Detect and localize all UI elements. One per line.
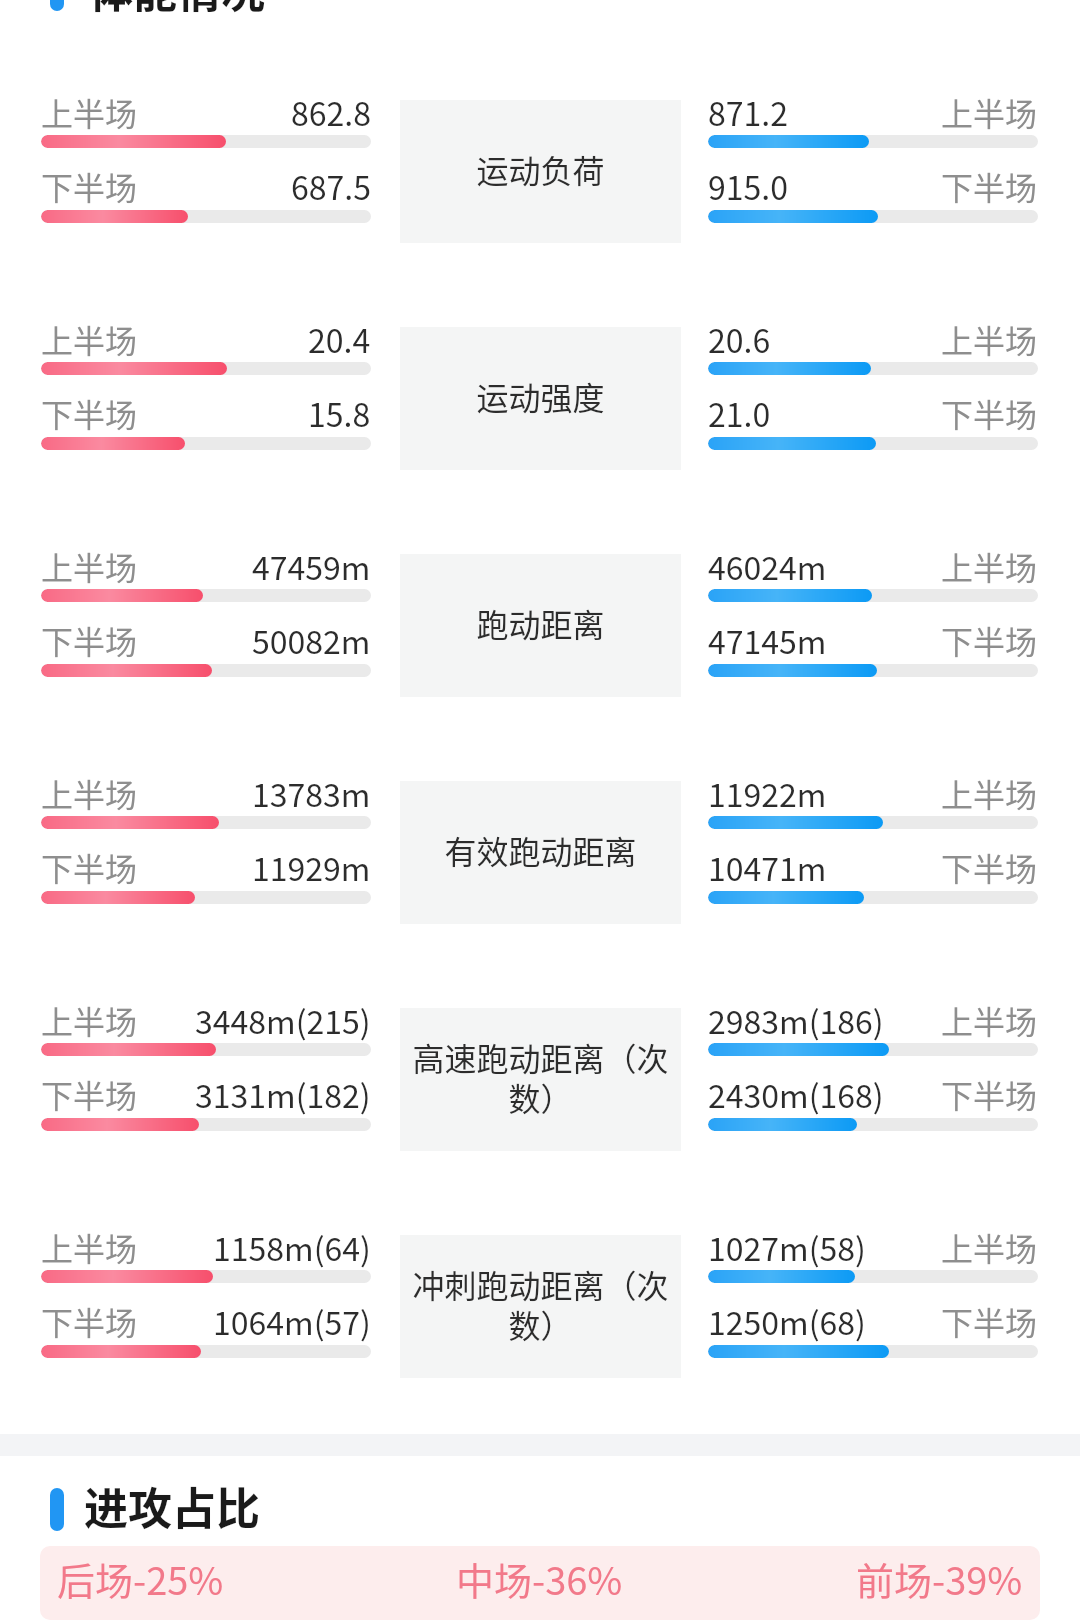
button[interactable]: 上半场	[41, 781, 1039, 1008]
staticText: 冲刺跑动距离（次数）	[400, 1261, 681, 1347]
staticText: 中场-36%	[456, 1551, 623, 1606]
other: Section marker	[50, 1488, 64, 1531]
staticText: 下半场	[41, 1298, 138, 1344]
button[interactable]: 上半场	[41, 327, 1039, 554]
staticText: 21.0	[708, 390, 771, 436]
button[interactable]: 上半场	[41, 554, 1039, 781]
staticText: 下半场	[41, 390, 138, 436]
staticText: 下半场	[941, 390, 1038, 436]
staticText: 下半场	[941, 163, 1038, 209]
staticText: 下半场	[941, 844, 1038, 890]
staticText: 47145m	[708, 617, 827, 663]
staticText: 下半场	[41, 1071, 138, 1117]
staticText: 47459m	[252, 543, 371, 589]
staticText: 20.4	[308, 316, 371, 362]
staticText: 13783m	[252, 770, 371, 816]
staticText: 2983m(186)	[708, 997, 884, 1043]
staticText: 上半场	[941, 1224, 1038, 1270]
staticText: 1064m(57)	[213, 1298, 371, 1344]
staticText: 上半场	[41, 316, 138, 362]
staticText: 上半场	[941, 997, 1038, 1043]
button[interactable]: Section marker	[50, 0, 265, 21]
staticText: 下半场	[41, 163, 138, 209]
staticText: 高速跑动距离（次数）	[400, 1034, 681, 1120]
staticText: 862.8	[291, 89, 371, 135]
staticText: 50082m	[252, 617, 371, 663]
staticText: 上半场	[941, 316, 1038, 362]
staticText: 687.5	[291, 163, 371, 209]
staticText: 上半场	[941, 770, 1038, 816]
staticText: 3448m(215)	[195, 997, 371, 1043]
staticText: 46024m	[708, 543, 827, 589]
staticText: 上半场	[41, 543, 138, 589]
button[interactable]: Section marker	[50, 1474, 260, 1538]
staticText: 20.6	[708, 316, 771, 362]
staticText: 上半场	[941, 543, 1038, 589]
staticText: 1027m(58)	[708, 1224, 866, 1270]
staticText: 运动负荷	[476, 146, 605, 192]
staticText: 3131m(182)	[195, 1071, 371, 1117]
staticText: 1250m(68)	[708, 1298, 866, 1344]
button[interactable]: 上半场	[41, 100, 1039, 327]
staticText: 915.0	[708, 163, 788, 209]
staticText: 871.2	[708, 89, 788, 135]
staticText: 11929m	[252, 844, 371, 890]
staticText: 上半场	[941, 89, 1038, 135]
staticText: 2430m(168)	[708, 1071, 884, 1117]
staticText: 15.8	[308, 390, 371, 436]
staticText: 运动强度	[476, 373, 605, 419]
staticText: 10471m	[708, 844, 827, 890]
staticText: 11922m	[708, 770, 827, 816]
button[interactable]: 后场-25%	[40, 1546, 1040, 1620]
other: Section marker	[50, 0, 64, 11]
staticText: 上半场	[41, 1224, 138, 1270]
staticText: 下半场	[941, 1298, 1038, 1344]
staticText: 体能情况	[89, 0, 265, 21]
staticText: 下半场	[941, 1071, 1038, 1117]
staticText: 下半场	[41, 617, 138, 663]
button[interactable]: 上半场	[41, 1008, 1039, 1235]
staticText: 有效跑动距离	[444, 827, 637, 873]
staticText: 下半场	[941, 617, 1038, 663]
staticText: 进攻占比	[84, 1474, 260, 1538]
staticText: 上半场	[41, 89, 138, 135]
staticText: 下半场	[41, 844, 138, 890]
staticText: 上半场	[41, 997, 138, 1043]
staticText: 跑动距离	[476, 600, 605, 646]
staticText: 前场-39%	[856, 1551, 1023, 1606]
staticText: 1158m(64)	[213, 1224, 371, 1270]
staticText: 后场-25%	[57, 1551, 224, 1606]
staticText: 上半场	[41, 770, 138, 816]
button[interactable]: 上半场	[41, 1235, 1039, 1462]
